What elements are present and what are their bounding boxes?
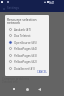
button[interactable]: Aaskarb (#7) — [5, 26, 49, 33]
button[interactable]: YellowPages (#2) — [5, 58, 49, 65]
button[interactable]: Recents — [10, 85, 18, 93]
button[interactable]: Navigate up — [1, 6, 6, 11]
staticText: DataSecret (#1) — [14, 67, 35, 71]
staticText: 9:41 — [49, 1, 55, 5]
staticText: YellowPages (#3) — [14, 54, 37, 58]
staticText: CANCEL — [37, 70, 47, 74]
staticText: YellowPages (#4) — [14, 47, 37, 51]
button[interactable]: YellowPages (#4) — [5, 45, 49, 52]
button[interactable]: Das Teletext — [5, 32, 49, 39]
button[interactable]: YellowPages (#3) — [5, 52, 49, 59]
button[interactable]: Back — [35, 85, 43, 93]
staticText: Settings — [7, 6, 20, 10]
button[interactable]: CANCEL — [35, 69, 49, 75]
staticText: Das Teletext — [14, 34, 31, 38]
staticText: Aaskarb (#7) — [14, 28, 31, 32]
staticText: YellowPages (#2) — [14, 60, 37, 64]
button[interactable]: OpenSource (#5) — [5, 39, 49, 46]
button[interactable]: Home — [23, 85, 31, 93]
staticText: OpenSource (#5) — [14, 41, 37, 45]
staticText: network — [7, 20, 21, 24]
staticText: Resource selection — [7, 17, 37, 21]
button[interactable]: DataSecret (#1) — [5, 65, 49, 72]
